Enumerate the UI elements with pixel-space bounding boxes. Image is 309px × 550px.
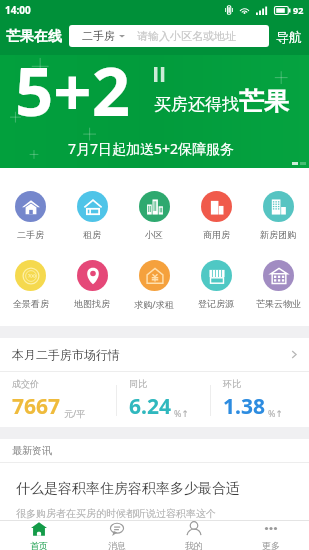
staticText: 本月二手房市场行情: [12, 347, 120, 362]
staticText: 求购/求租: [134, 298, 174, 310]
staticText: 更多: [262, 540, 280, 550]
staticText: 商用房: [203, 229, 230, 240]
button[interactable]: 商用房: [185, 191, 247, 240]
staticText: 新房团购: [260, 229, 296, 240]
button[interactable]: 全景看房: [0, 260, 61, 309]
button[interactable]: 登记房源: [185, 260, 247, 309]
staticText: 消息: [108, 540, 126, 550]
staticText: 92: [293, 4, 304, 16]
staticText: 7667: [12, 392, 61, 421]
staticText: 14:00: [5, 3, 31, 17]
button[interactable]: 什么是容积率住房容积率多少最合适: [0, 463, 309, 520]
other: Wi-Fi: [239, 6, 250, 15]
staticText: 首页: [30, 540, 48, 550]
staticText: 同比: [129, 378, 147, 389]
button[interactable]: 更多: [232, 521, 309, 550]
staticText: 5+2: [15, 44, 130, 135]
staticText: 什么是容积率住房容积率多少最合适: [16, 480, 240, 498]
staticText: 二手房: [82, 29, 115, 43]
staticText: 二手房: [17, 229, 44, 240]
button[interactable]: 求购/求租: [123, 260, 185, 310]
button[interactable]: 首页: [0, 521, 78, 550]
staticText: 请输入小区名或地址: [137, 29, 236, 43]
button[interactable]: 租房: [61, 191, 123, 240]
staticText: 我的: [185, 540, 203, 550]
staticText: 最新资讯: [12, 444, 52, 457]
button[interactable]: 我的: [155, 521, 232, 550]
staticText: 地图找房: [74, 298, 110, 309]
staticText: 成交价: [12, 378, 39, 389]
staticText: 芒果: [239, 86, 289, 117]
staticText: 登记房源: [198, 298, 234, 309]
button[interactable]: 二手房: [69, 25, 269, 47]
staticText: 6.24: [129, 392, 171, 421]
staticText: 元/平: [64, 407, 86, 419]
button[interactable]: 二手房: [0, 191, 61, 240]
staticText: 租房: [83, 229, 101, 240]
other: Signal: [256, 6, 267, 15]
staticText: 环比: [223, 378, 241, 389]
button[interactable]: 本月二手房市场行情: [0, 338, 309, 371]
button[interactable]: 导航: [268, 19, 309, 55]
staticText: %↑: [268, 407, 284, 419]
staticText: %↑: [174, 407, 190, 419]
staticText: 导航: [276, 29, 302, 45]
staticText: 全景看房: [13, 298, 49, 309]
staticText: 芒果在线: [6, 28, 62, 46]
button[interactable]: 芒果云物业: [247, 260, 309, 309]
button[interactable]: 小区: [123, 191, 185, 240]
other: Vibrate: [225, 5, 233, 15]
staticText: 买房还得找: [154, 94, 239, 115]
staticText: 很多购房者在买房的时候都听说过容积率这个: [16, 507, 216, 520]
staticText: 7月7日起加送5+2保障服务: [68, 139, 235, 158]
staticText: 小区: [145, 229, 163, 240]
other: Battery: [274, 6, 290, 15]
staticText: 1.38: [223, 392, 265, 421]
button[interactable]: 新房团购: [247, 191, 309, 240]
staticText: 芒果云物业: [256, 298, 301, 309]
button[interactable]: 消息: [78, 521, 155, 550]
button[interactable]: 地图找房: [61, 260, 123, 309]
